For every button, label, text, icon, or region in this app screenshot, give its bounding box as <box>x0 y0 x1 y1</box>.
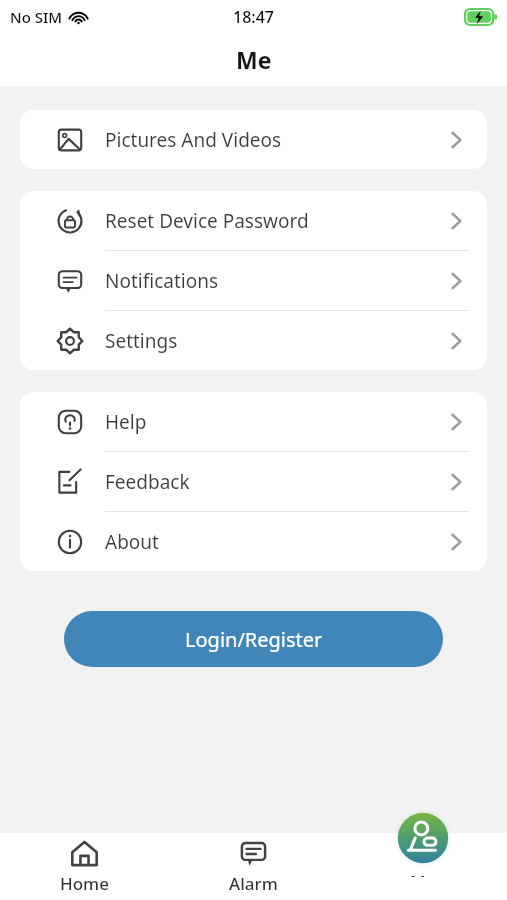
staticText: Me <box>410 870 436 877</box>
button[interactable]: Help <box>20 392 487 451</box>
staticText: About <box>105 529 159 555</box>
button[interactable]: Reset Device Password <box>20 191 487 250</box>
staticText: Pictures And Videos <box>105 127 282 153</box>
button[interactable]: Settings <box>20 311 487 370</box>
button[interactable]: Notifications <box>20 251 487 310</box>
button[interactable]: About <box>20 512 487 571</box>
button[interactable]: Home <box>0 833 169 900</box>
staticText: Login/Register <box>185 626 323 653</box>
staticText: Settings <box>105 328 178 354</box>
staticText: Me <box>236 44 272 75</box>
button[interactable]: Pictures And Videos <box>20 110 487 169</box>
button[interactable]: Alarm <box>169 833 338 900</box>
staticText: 18:47 <box>233 6 274 28</box>
button[interactable]: Login/Register <box>64 611 443 667</box>
staticText: Notifications <box>105 268 219 294</box>
staticText: Alarm <box>229 872 278 895</box>
button[interactable]: Me <box>338 810 507 877</box>
button[interactable]: Feedback <box>20 452 487 511</box>
staticText: Reset Device Password <box>105 208 309 234</box>
staticText: Home <box>60 872 109 895</box>
staticText: No SIM <box>10 7 63 27</box>
staticText: Feedback <box>105 469 190 495</box>
staticText: Help <box>105 409 147 435</box>
